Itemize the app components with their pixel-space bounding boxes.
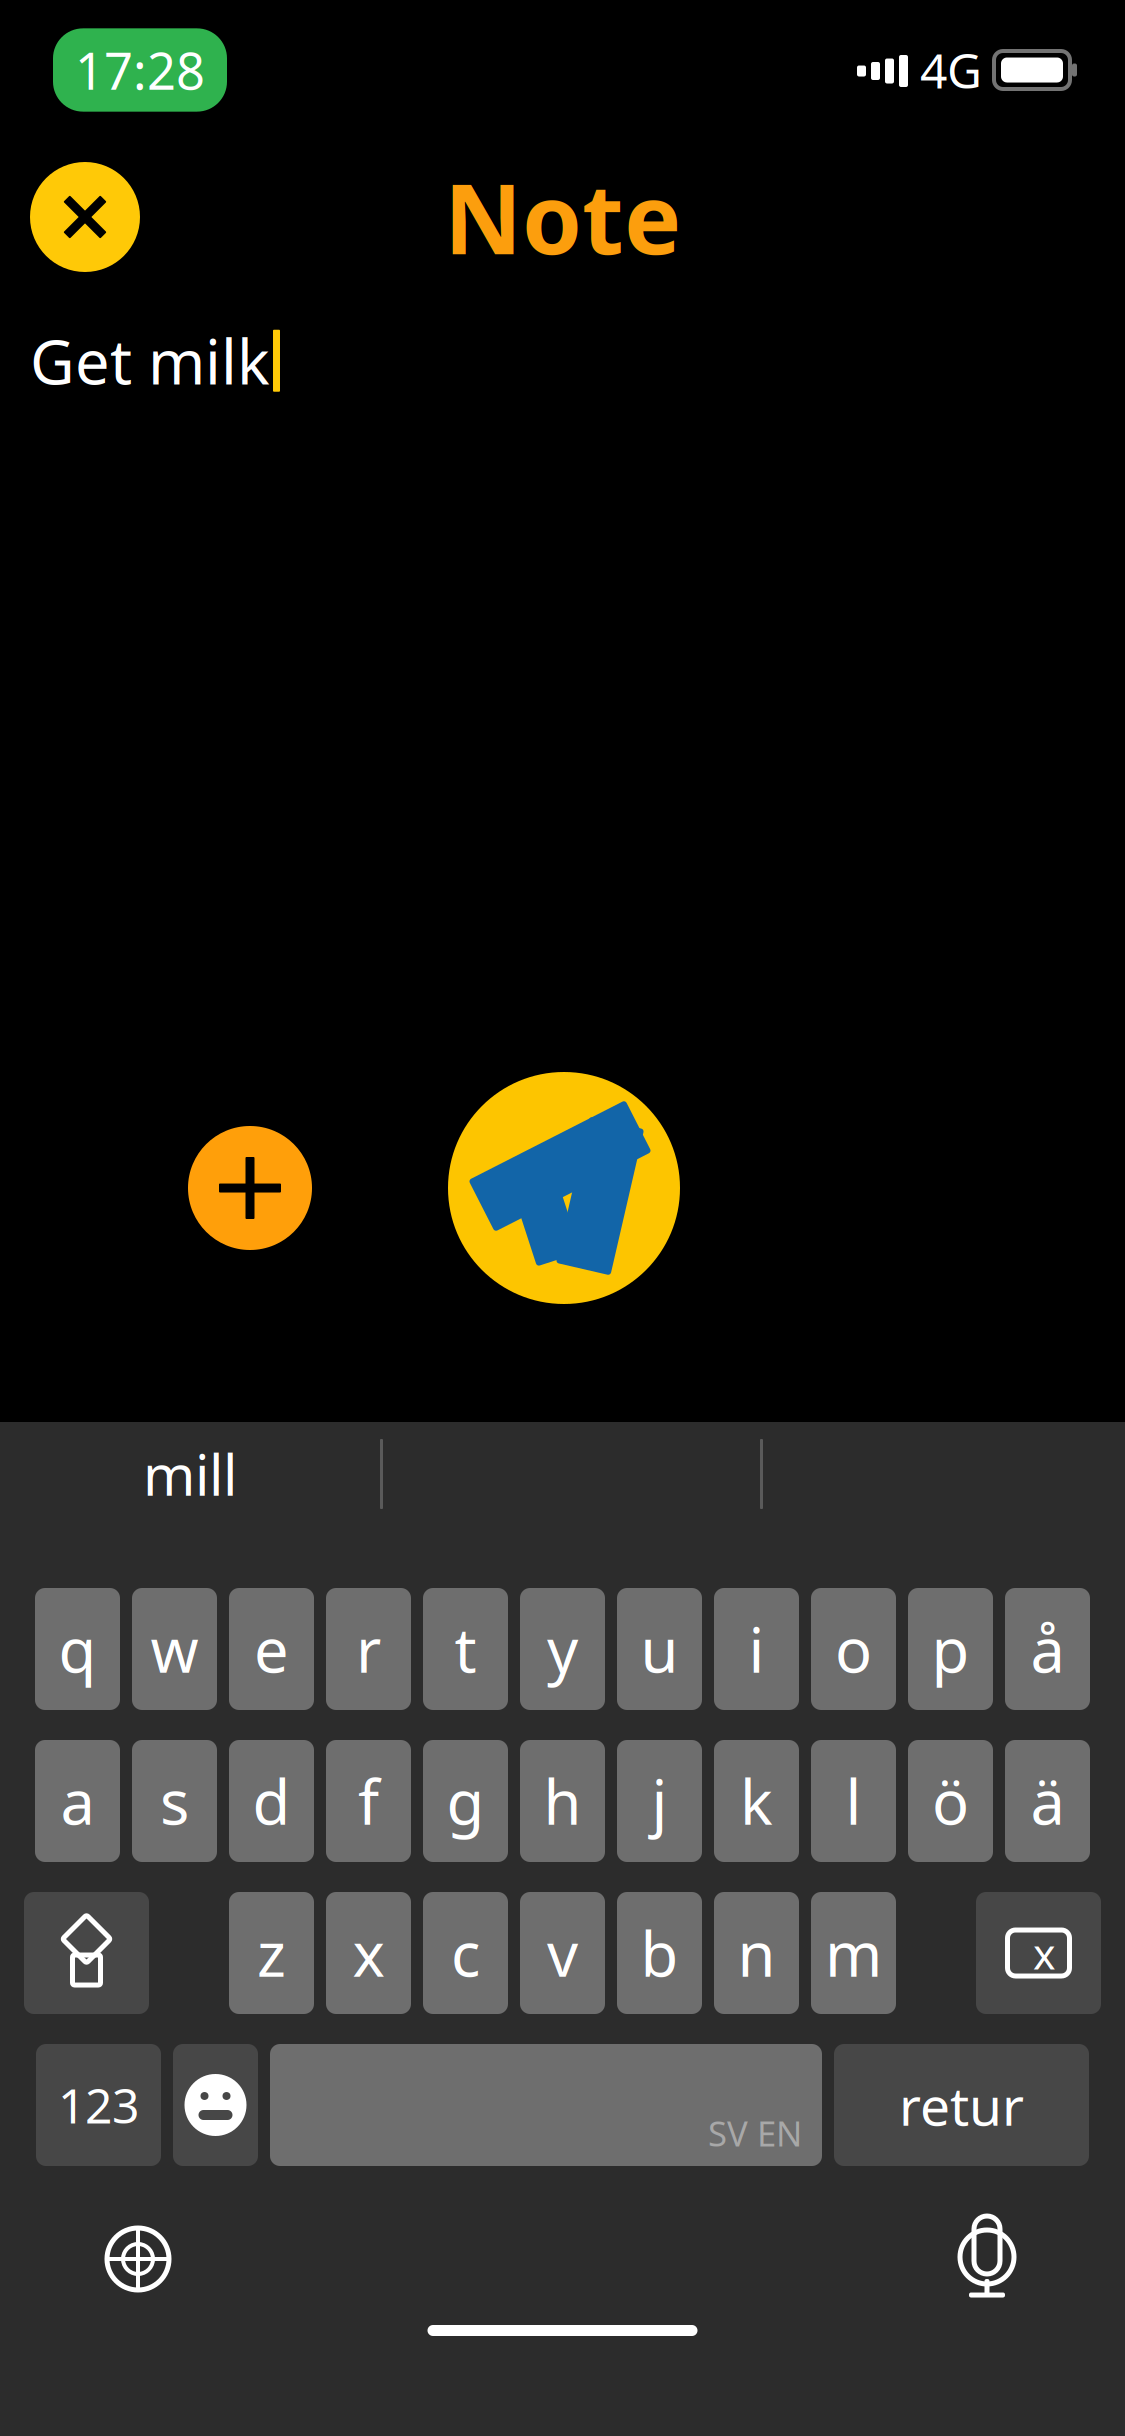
button[interactable]: ö bbox=[908, 1740, 993, 1862]
button[interactable]: Dictate bbox=[927, 2204, 1047, 2314]
button[interactable]: Shift bbox=[24, 1892, 149, 2014]
button[interactable]: y bbox=[520, 1588, 605, 1710]
button[interactable]: h bbox=[520, 1740, 605, 1862]
button[interactable]: m bbox=[811, 1892, 896, 2014]
button[interactable]: Change keyboard bbox=[78, 2204, 198, 2314]
button[interactable]: Close bbox=[30, 162, 140, 272]
staticText: r bbox=[356, 1608, 381, 1690]
button[interactable]: b bbox=[617, 1892, 702, 2014]
staticText: d bbox=[252, 1760, 290, 1842]
button[interactable]: mill bbox=[0, 1422, 380, 1526]
button[interactable]: ä bbox=[1005, 1740, 1090, 1862]
button[interactable]: q bbox=[35, 1588, 120, 1710]
staticText: k bbox=[740, 1760, 773, 1842]
staticText: a bbox=[60, 1760, 94, 1842]
button[interactable]: w bbox=[132, 1588, 217, 1710]
button[interactable]: p bbox=[908, 1588, 993, 1710]
button[interactable]: Add bbox=[188, 1126, 312, 1250]
staticText: g bbox=[446, 1760, 484, 1842]
button[interactable]: retur bbox=[834, 2044, 1089, 2166]
button[interactable]: u bbox=[617, 1588, 702, 1710]
staticText: y bbox=[547, 1608, 578, 1690]
button[interactable]: e bbox=[229, 1588, 314, 1710]
button[interactable]: 123 bbox=[36, 2044, 161, 2166]
button[interactable]: j bbox=[617, 1740, 702, 1862]
button[interactable]: s bbox=[132, 1740, 217, 1862]
staticText: o bbox=[835, 1608, 872, 1690]
button[interactable]: v bbox=[520, 1892, 605, 2014]
button[interactable]: c bbox=[423, 1892, 508, 2014]
staticText: i bbox=[748, 1608, 764, 1690]
staticText: x bbox=[1033, 1925, 1056, 1981]
button[interactable]: Space bbox=[270, 2044, 822, 2166]
staticText: z bbox=[257, 1912, 286, 1994]
staticText: Note bbox=[444, 153, 681, 281]
button[interactable]: Send bbox=[448, 1072, 680, 1304]
button[interactable]: Delete bbox=[976, 1892, 1101, 2014]
staticText: Get milk bbox=[30, 320, 270, 401]
button[interactable]: x bbox=[326, 1892, 411, 2014]
staticText: h bbox=[543, 1760, 581, 1842]
staticText: 17:28 bbox=[75, 36, 205, 104]
staticText: 4G bbox=[920, 38, 982, 102]
staticText: SV EN bbox=[708, 2110, 802, 2156]
button[interactable]: a bbox=[35, 1740, 120, 1862]
button[interactable]: g bbox=[423, 1740, 508, 1862]
staticText: e bbox=[254, 1608, 289, 1690]
staticText: c bbox=[451, 1912, 480, 1994]
button[interactable]: t bbox=[423, 1588, 508, 1710]
staticText: p bbox=[931, 1608, 969, 1690]
button[interactable]: Emoji bbox=[173, 2044, 258, 2166]
staticText: f bbox=[358, 1760, 379, 1842]
staticText: n bbox=[737, 1912, 775, 1994]
staticText: x bbox=[352, 1912, 384, 1994]
staticText: t bbox=[454, 1608, 476, 1690]
staticText: s bbox=[160, 1760, 189, 1842]
staticText: m bbox=[825, 1912, 882, 1994]
staticText: w bbox=[150, 1608, 198, 1690]
button[interactable]: d bbox=[229, 1740, 314, 1862]
staticText: v bbox=[547, 1912, 578, 1994]
button[interactable]: o bbox=[811, 1588, 896, 1710]
staticText: ö bbox=[932, 1760, 969, 1842]
staticText: ä bbox=[1030, 1760, 1064, 1842]
staticText: j bbox=[651, 1760, 667, 1842]
staticText: l bbox=[845, 1760, 861, 1842]
button[interactable]: k bbox=[714, 1740, 799, 1862]
staticText: retur bbox=[899, 2070, 1024, 2140]
button[interactable]: z bbox=[229, 1892, 314, 2014]
button[interactable]: l bbox=[811, 1740, 896, 1862]
staticText: b bbox=[640, 1912, 678, 1994]
staticText: å bbox=[1030, 1608, 1064, 1690]
button[interactable]: f bbox=[326, 1740, 411, 1862]
staticText: u bbox=[640, 1608, 678, 1690]
button[interactable]: r bbox=[326, 1588, 411, 1710]
staticText: mill bbox=[143, 1437, 237, 1511]
button[interactable]: å bbox=[1005, 1588, 1090, 1710]
staticText: 123 bbox=[58, 2073, 139, 2137]
button[interactable]: n bbox=[714, 1892, 799, 2014]
button[interactable]: i bbox=[714, 1588, 799, 1710]
staticText: q bbox=[58, 1608, 96, 1690]
